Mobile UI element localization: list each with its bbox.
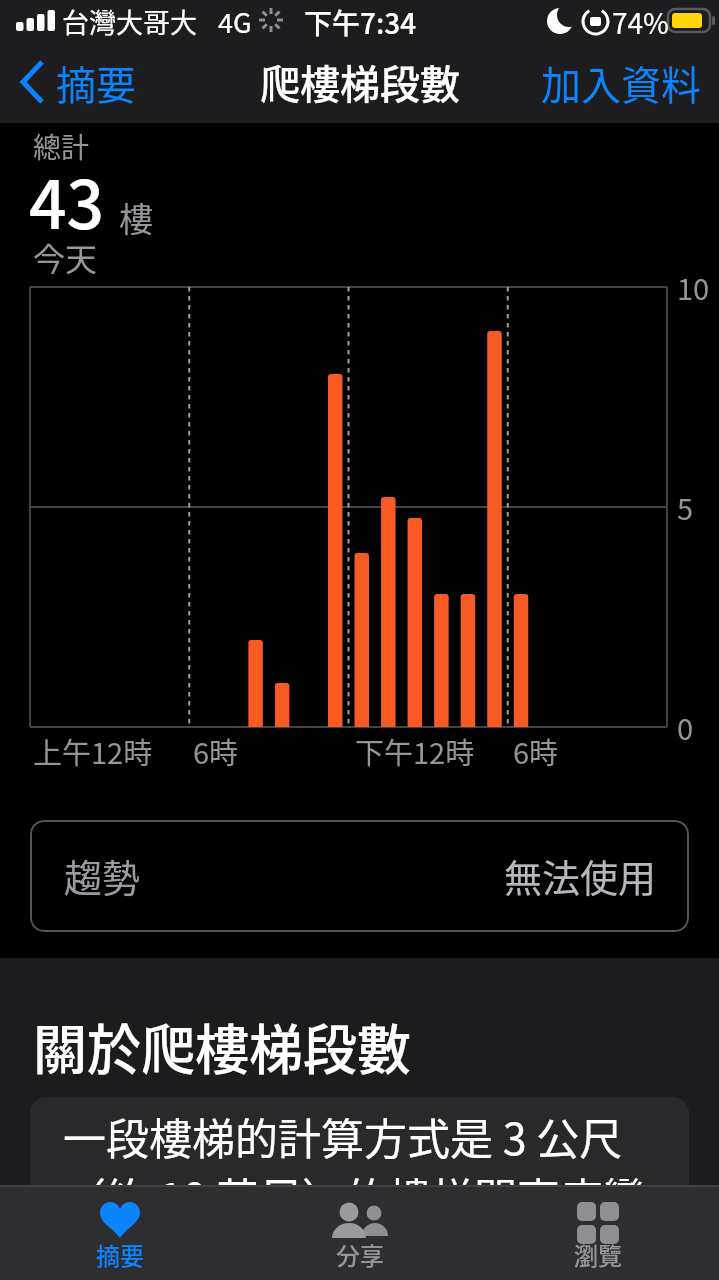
- button[interactable]: 一段樓梯的計算方式是 3 公尺: [30, 1097, 689, 1280]
- staticText: 趨勢: [64, 848, 141, 903]
- button[interactable]: [239, 1185, 479, 1280]
- staticText: 4G: [218, 2, 252, 41]
- staticText: 一段樓梯的計算方式是 3 公尺: [63, 1105, 623, 1167]
- staticText: 關於爬樓梯段數: [33, 1007, 411, 1085]
- button[interactable]: 摘要: [20, 54, 150, 106]
- staticText: 10: [677, 266, 710, 308]
- staticText: 上午12時: [33, 730, 153, 772]
- staticText: 74%: [612, 2, 669, 43]
- staticText: 5: [677, 486, 694, 528]
- staticText: 0: [677, 706, 694, 748]
- staticText: 摘要: [56, 54, 136, 106]
- staticText: 分享: [336, 1237, 384, 1272]
- staticText: 瀏覽: [574, 1237, 622, 1272]
- staticText: 摘要: [96, 1237, 144, 1272]
- staticText: 加入資料: [541, 54, 701, 106]
- staticText: 爬樓梯段數: [260, 53, 460, 111]
- staticText: 總計: [33, 126, 90, 167]
- staticText: 樓: [119, 193, 153, 242]
- button[interactable]: [479, 1185, 719, 1280]
- button[interactable]: [0, 1185, 239, 1280]
- staticText: 台灣大哥大: [62, 2, 197, 41]
- staticText: 下午12時: [355, 730, 475, 772]
- staticText: 今天: [33, 234, 98, 280]
- staticText: 6時: [193, 730, 239, 772]
- staticText: （約 10 英尺）的樓梯間高度變: [63, 1165, 646, 1227]
- staticText: 無法使用: [504, 848, 657, 903]
- button[interactable]: 加入資料: [518, 54, 701, 106]
- staticText: 下午7:34: [304, 2, 417, 43]
- staticText: 43: [29, 152, 105, 248]
- button[interactable]: 趨勢: [30, 820, 689, 932]
- staticText: 6時: [513, 730, 559, 772]
